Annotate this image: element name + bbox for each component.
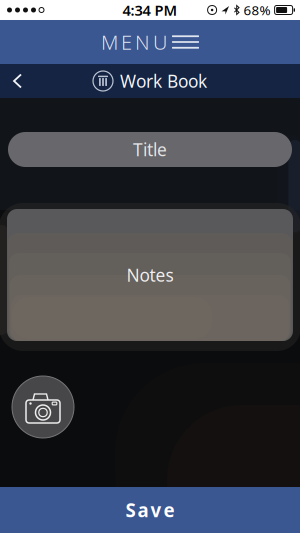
staticText: Work Book [120,69,207,92]
staticText: 68% [244,1,271,19]
staticText: Title [133,138,167,161]
button[interactable]: Title [0,132,300,167]
button[interactable]: Save [0,487,300,533]
button[interactable]: Take Photo [12,376,74,438]
staticText: Notes [126,263,173,286]
staticText: M E N U [101,29,167,55]
button[interactable]: Menu [101,29,199,55]
staticText: S a v e [125,498,174,522]
button[interactable]: Notes [0,209,300,341]
button[interactable]: Back [0,73,22,88]
staticText: 4:34 PM [122,0,177,20]
